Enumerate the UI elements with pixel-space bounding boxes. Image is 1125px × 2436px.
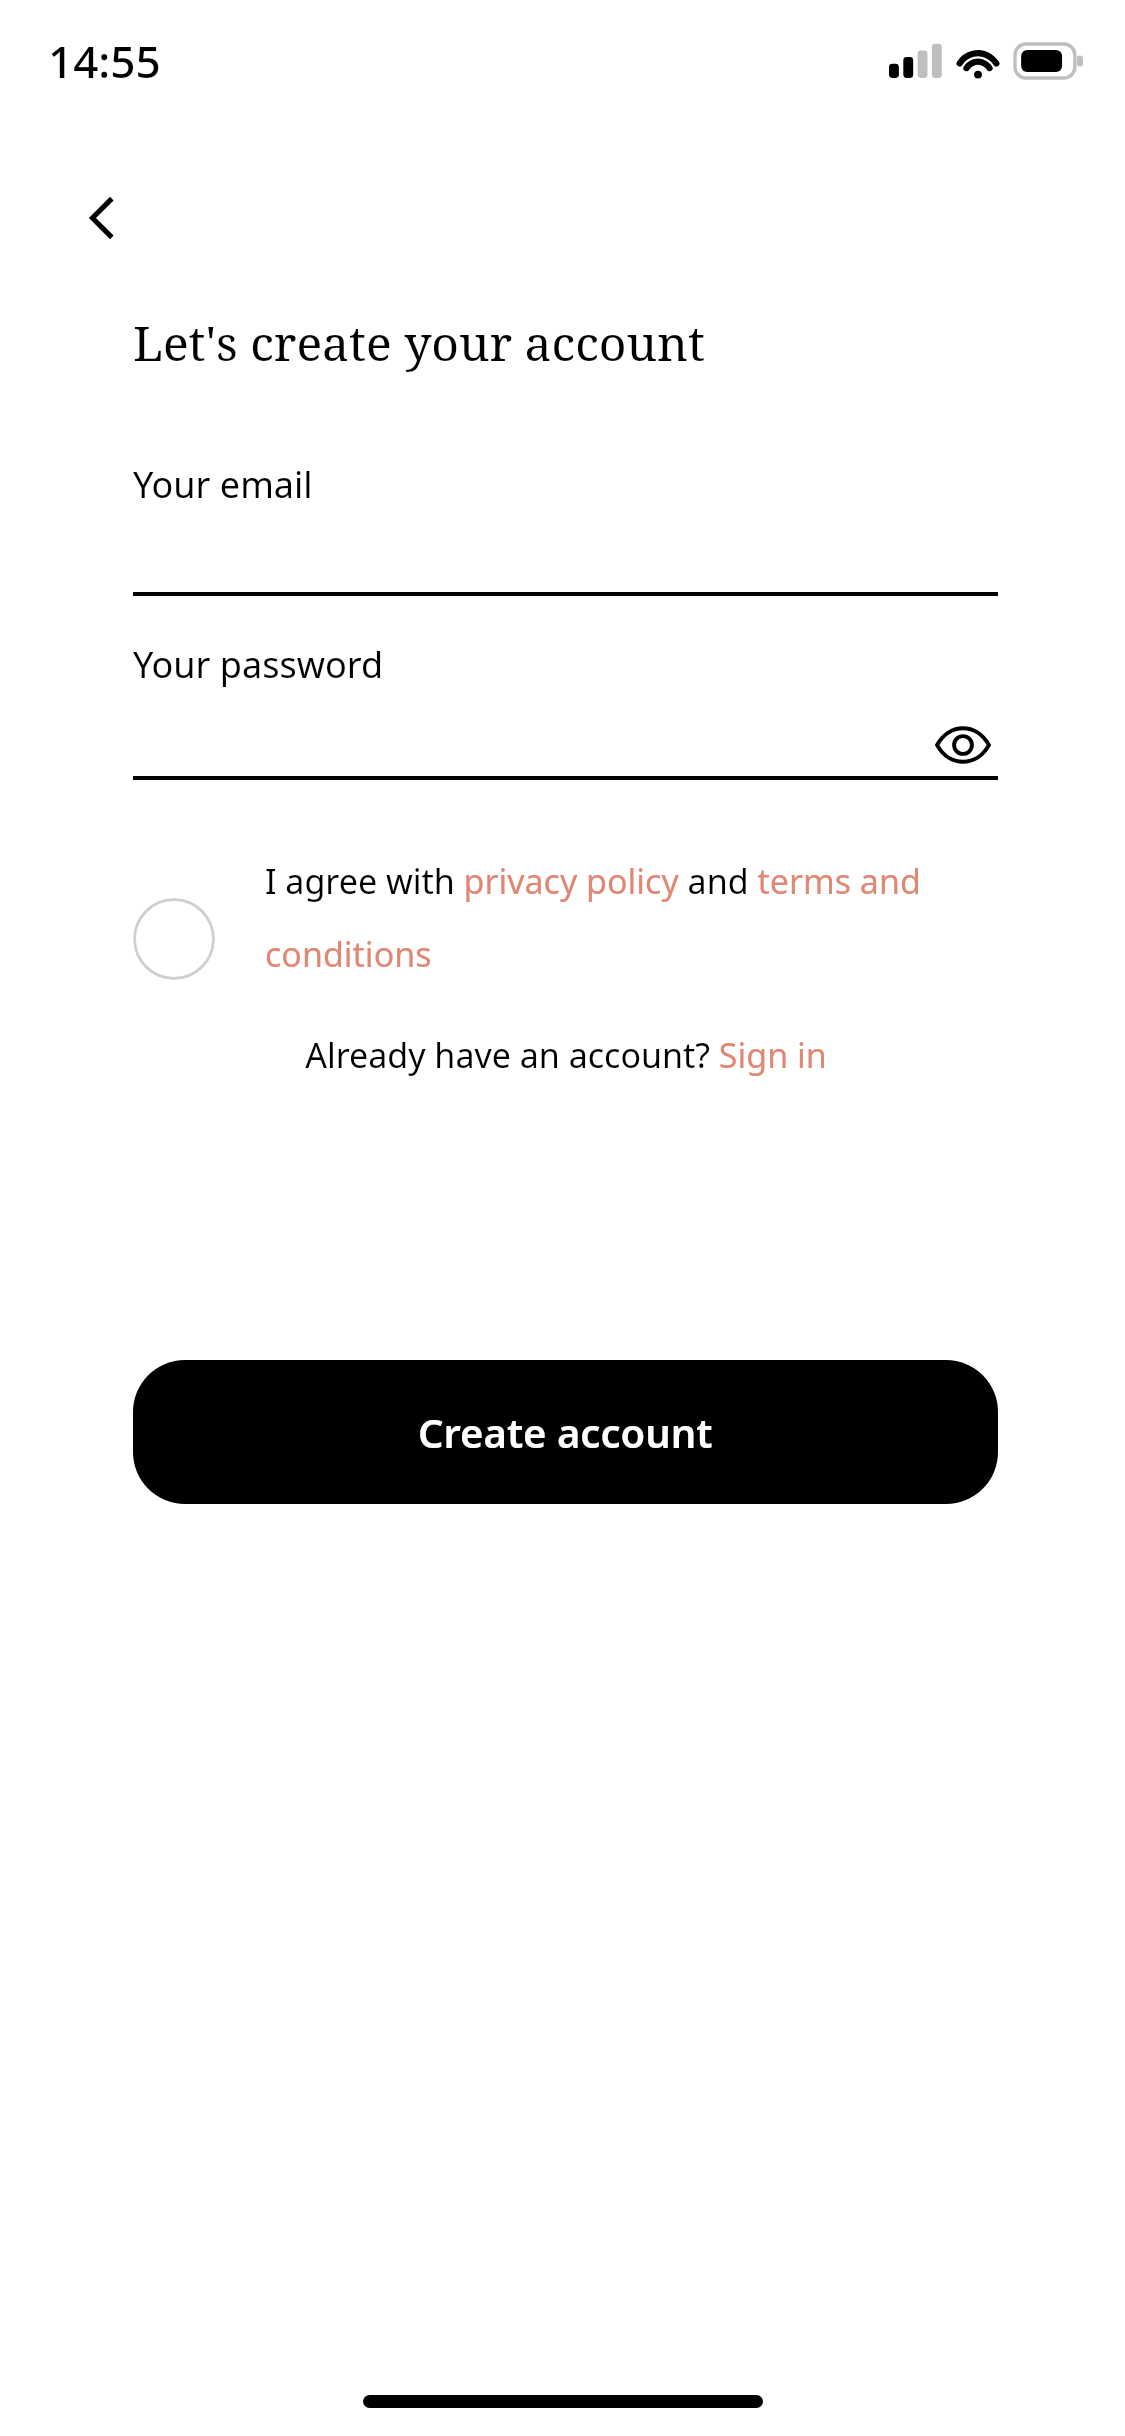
staticText: Create account — [418, 1405, 713, 1459]
button[interactable]: Show password — [928, 717, 998, 773]
staticText: Your password — [133, 640, 384, 689]
button[interactable]: Back — [60, 175, 146, 261]
button[interactable]: Create account — [133, 1360, 998, 1504]
button[interactable]: Agree to terms checkbox — [133, 898, 215, 980]
button[interactable]: I agree with privacy policy and terms an… — [265, 858, 998, 976]
staticText: Already have an account? Sign in — [305, 1032, 827, 1078]
button[interactable]: Already have an account? Sign in — [305, 1032, 827, 1078]
staticText: Let's create your account — [133, 310, 705, 375]
staticText: I agree with privacy policy and terms an… — [265, 858, 998, 976]
staticText: 14:55 — [48, 31, 161, 91]
staticText: Your email — [133, 460, 313, 509]
